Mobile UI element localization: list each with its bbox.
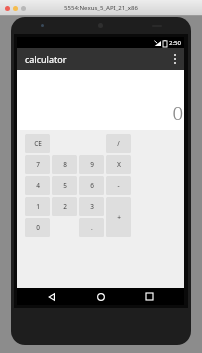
button[interactable]: / bbox=[106, 134, 131, 153]
button[interactable]: 2 bbox=[52, 197, 77, 216]
button[interactable]: 9 bbox=[79, 155, 104, 174]
staticText: 5554:Nexus_5_API_21_x86 bbox=[64, 4, 138, 12]
button[interactable]: 1 bbox=[25, 197, 50, 216]
staticText: 2:50 bbox=[169, 39, 181, 47]
staticText: CE bbox=[34, 139, 42, 148]
button[interactable]: 7 bbox=[25, 155, 50, 174]
button[interactable]: CE bbox=[25, 134, 50, 153]
staticText: 4 bbox=[36, 181, 40, 190]
button[interactable]: Back bbox=[38, 288, 66, 305]
staticText: 7 bbox=[36, 160, 40, 169]
button[interactable]: X bbox=[106, 155, 131, 174]
staticText: 0 bbox=[172, 100, 183, 126]
staticText: 8 bbox=[63, 160, 67, 169]
button[interactable]: 5 bbox=[52, 176, 77, 195]
button[interactable]: - bbox=[106, 176, 131, 195]
staticText: 1 bbox=[36, 202, 40, 211]
button[interactable]: Recent apps bbox=[135, 288, 163, 305]
button[interactable]: 3 bbox=[79, 197, 104, 216]
staticText: 5 bbox=[63, 181, 67, 190]
staticText: . bbox=[91, 223, 93, 232]
staticText: 6 bbox=[90, 181, 94, 190]
staticText: - bbox=[117, 181, 120, 190]
button[interactable]: More options bbox=[166, 48, 184, 70]
staticText: 9 bbox=[90, 160, 94, 169]
button[interactable]: Home bbox=[87, 288, 115, 305]
button[interactable]: 0 bbox=[25, 218, 50, 237]
button[interactable]: + bbox=[106, 197, 131, 237]
staticText: 0 bbox=[36, 223, 40, 232]
staticText: calculator bbox=[25, 53, 67, 65]
staticText: + bbox=[117, 213, 121, 222]
button[interactable]: 6 bbox=[79, 176, 104, 195]
button[interactable]: 8 bbox=[52, 155, 77, 174]
button[interactable]: . bbox=[79, 218, 104, 237]
staticText: 2 bbox=[63, 202, 67, 211]
staticText: X bbox=[117, 160, 121, 169]
button[interactable]: 4 bbox=[25, 176, 50, 195]
staticText: 3 bbox=[90, 202, 94, 211]
staticText: / bbox=[117, 139, 120, 148]
